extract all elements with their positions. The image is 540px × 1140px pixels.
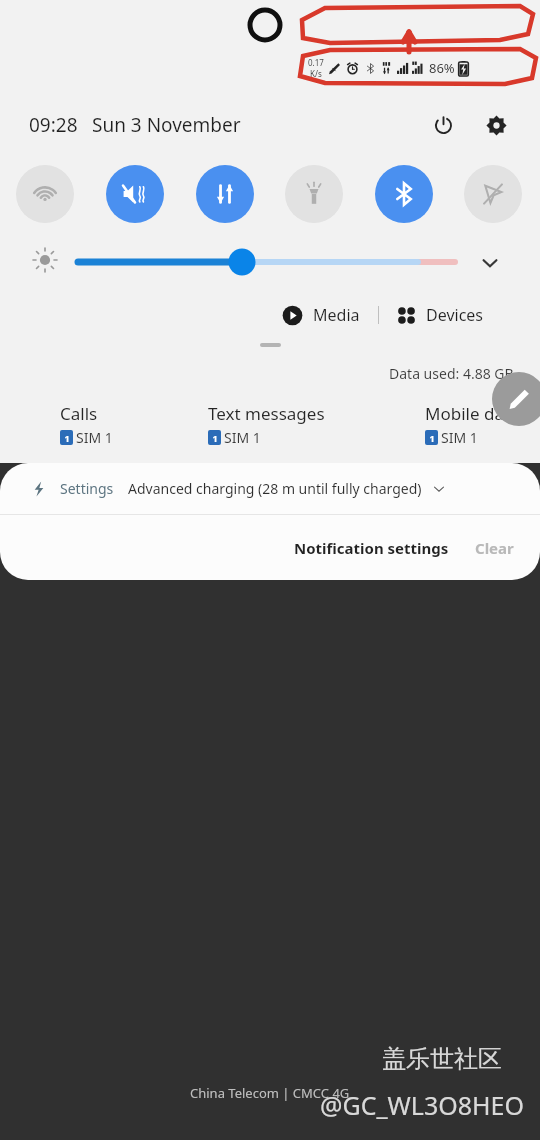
button[interactable]: Expand brightness bbox=[472, 245, 508, 281]
staticText: SIM 1 bbox=[76, 428, 113, 447]
button[interactable]: Media bbox=[278, 304, 364, 326]
button[interactable]: Bluetooth bbox=[375, 165, 433, 223]
staticText: Clear bbox=[475, 538, 514, 558]
staticText: SIM 1 bbox=[224, 428, 261, 447]
button[interactable]: Clear bbox=[461, 528, 540, 568]
staticText: Settings bbox=[60, 479, 114, 498]
staticText: Advanced charging (28 m until fully char… bbox=[128, 479, 422, 498]
staticText: Devices bbox=[426, 304, 484, 326]
button[interactable]: Notification settings bbox=[282, 528, 461, 568]
staticText: 1 bbox=[64, 432, 70, 444]
button[interactable]: Brightness bbox=[30, 245, 60, 275]
button[interactable]: Location off bbox=[464, 165, 522, 223]
staticText: 1 bbox=[212, 432, 218, 444]
staticText: 盖乐世社区 bbox=[382, 1044, 502, 1074]
staticText: Mobile data bbox=[425, 402, 520, 425]
button[interactable] bbox=[70, 248, 460, 276]
button[interactable]: Calls bbox=[60, 402, 113, 447]
button[interactable]: Mute bbox=[106, 165, 164, 223]
button[interactable]: Mobile data bbox=[425, 402, 520, 447]
staticText: 1 bbox=[429, 432, 435, 444]
staticText: China Telecom | CMCC 4G bbox=[190, 1084, 350, 1102]
staticText: 86% bbox=[429, 59, 455, 77]
staticText: Notification settings bbox=[294, 538, 449, 558]
button[interactable]: Settings bbox=[475, 104, 517, 146]
button[interactable]: Power bbox=[422, 104, 464, 146]
staticText: 0.17 bbox=[308, 57, 324, 68]
staticText: 09:28 bbox=[29, 112, 78, 138]
staticText: Data used: 4.88 GB bbox=[389, 364, 514, 383]
staticText: Media bbox=[313, 304, 360, 326]
staticText: Calls bbox=[60, 402, 98, 425]
staticText: SIM 1 bbox=[441, 428, 478, 447]
button[interactable]: Settings bbox=[0, 463, 540, 514]
button[interactable]: Wi-Fi bbox=[16, 165, 74, 223]
button[interactable]: Text messages bbox=[208, 402, 325, 447]
staticText: Sun 3 November bbox=[92, 112, 241, 138]
button[interactable]: Edit bbox=[492, 372, 540, 426]
staticText: Text messages bbox=[208, 402, 325, 425]
button[interactable]: Mobile data bbox=[196, 165, 254, 223]
button[interactable]: Devices bbox=[393, 304, 488, 326]
button[interactable]: Flashlight bbox=[285, 165, 343, 223]
staticText: @GC_WL3O8HEO bbox=[320, 1088, 525, 1122]
staticText: K/s bbox=[310, 68, 322, 79]
